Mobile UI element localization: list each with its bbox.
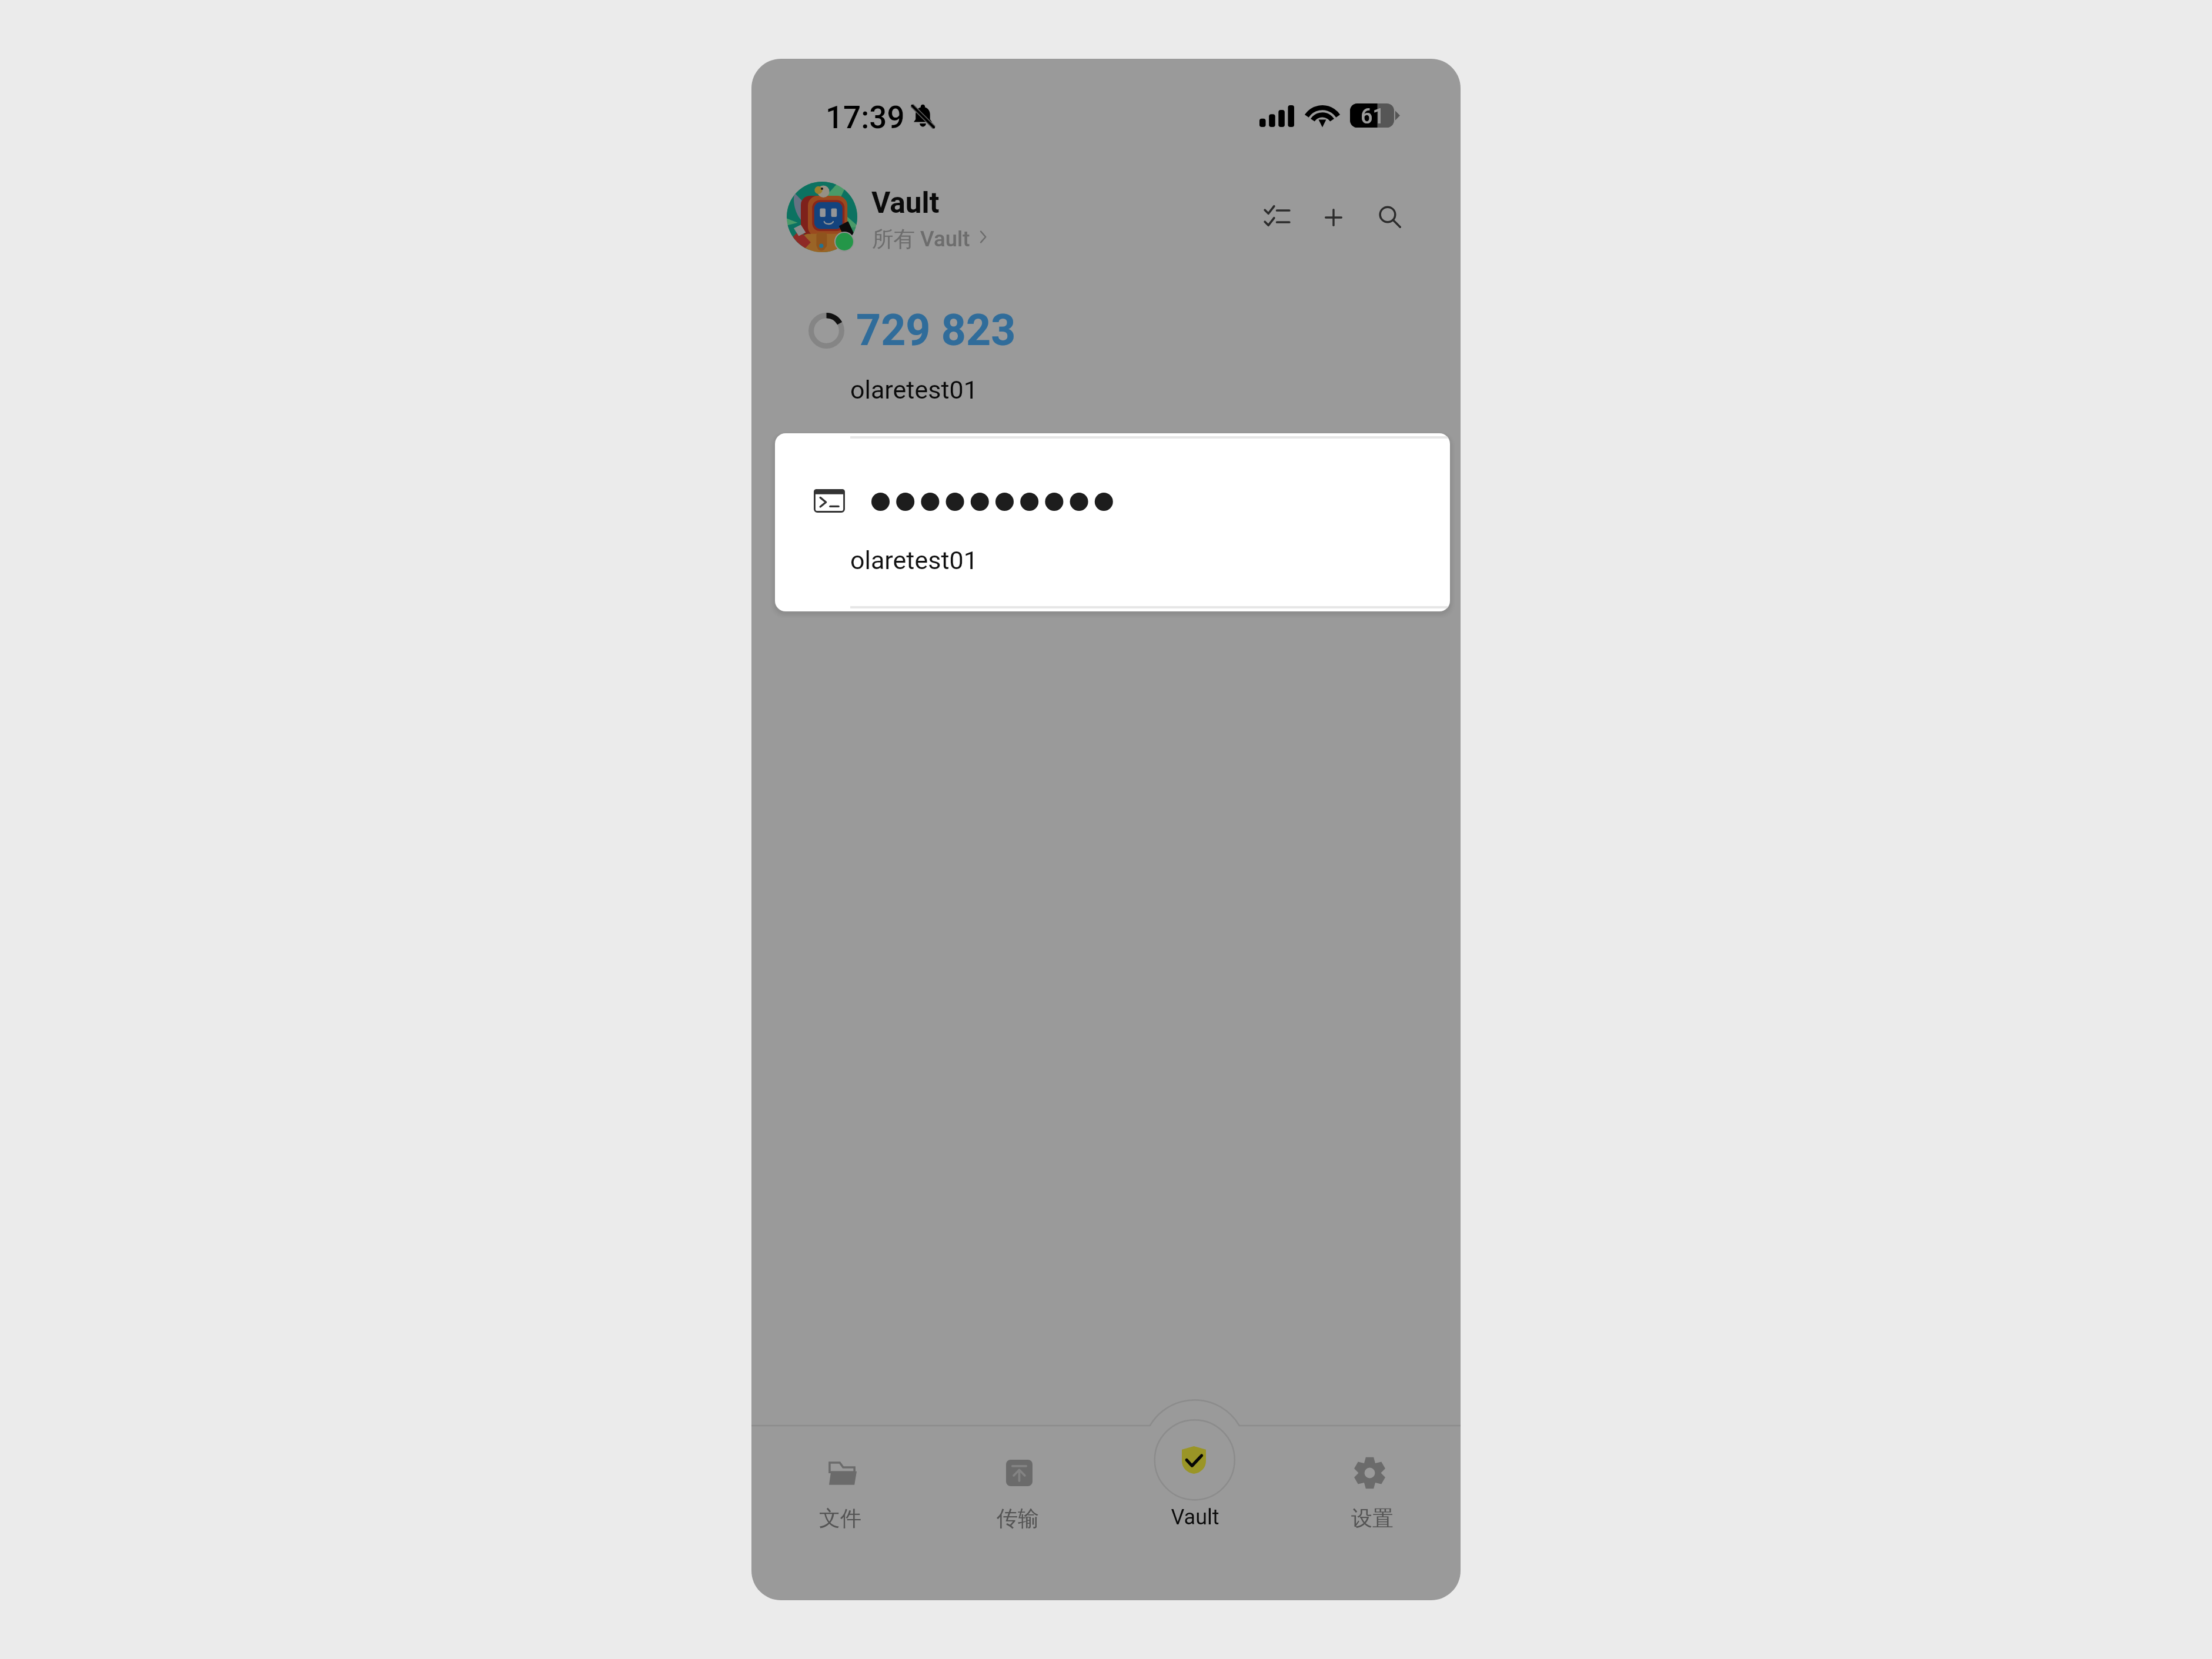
staticText: olaretest01 — [850, 546, 978, 575]
staticText: 17:39 — [826, 99, 905, 136]
button[interactable]: 传输 — [929, 1434, 1107, 1552]
staticText: 61 — [1361, 104, 1385, 128]
button[interactable]: Vault — [1106, 1434, 1284, 1552]
staticText: 文件 — [819, 1505, 861, 1531]
button[interactable]: Search — [1368, 195, 1412, 239]
button[interactable]: 设置 — [1284, 1434, 1461, 1552]
button[interactable]: Select — [1255, 194, 1299, 239]
staticText: 729 823 — [856, 305, 1016, 356]
staticText: Vault — [871, 186, 940, 220]
staticText: 所有 Vault — [872, 226, 970, 253]
button[interactable]: Add — [1311, 195, 1356, 240]
staticText: 传输 — [997, 1505, 1039, 1531]
button[interactable]: 729 823 — [787, 301, 1257, 419]
button[interactable]: 文件 — [751, 1434, 929, 1552]
staticText: olaretest01 — [850, 375, 978, 404]
button[interactable]: Vault — [781, 174, 998, 261]
button[interactable]: olaretest01 — [775, 433, 1450, 611]
staticText: Vault — [1171, 1505, 1219, 1530]
staticText: 设置 — [1351, 1505, 1394, 1531]
